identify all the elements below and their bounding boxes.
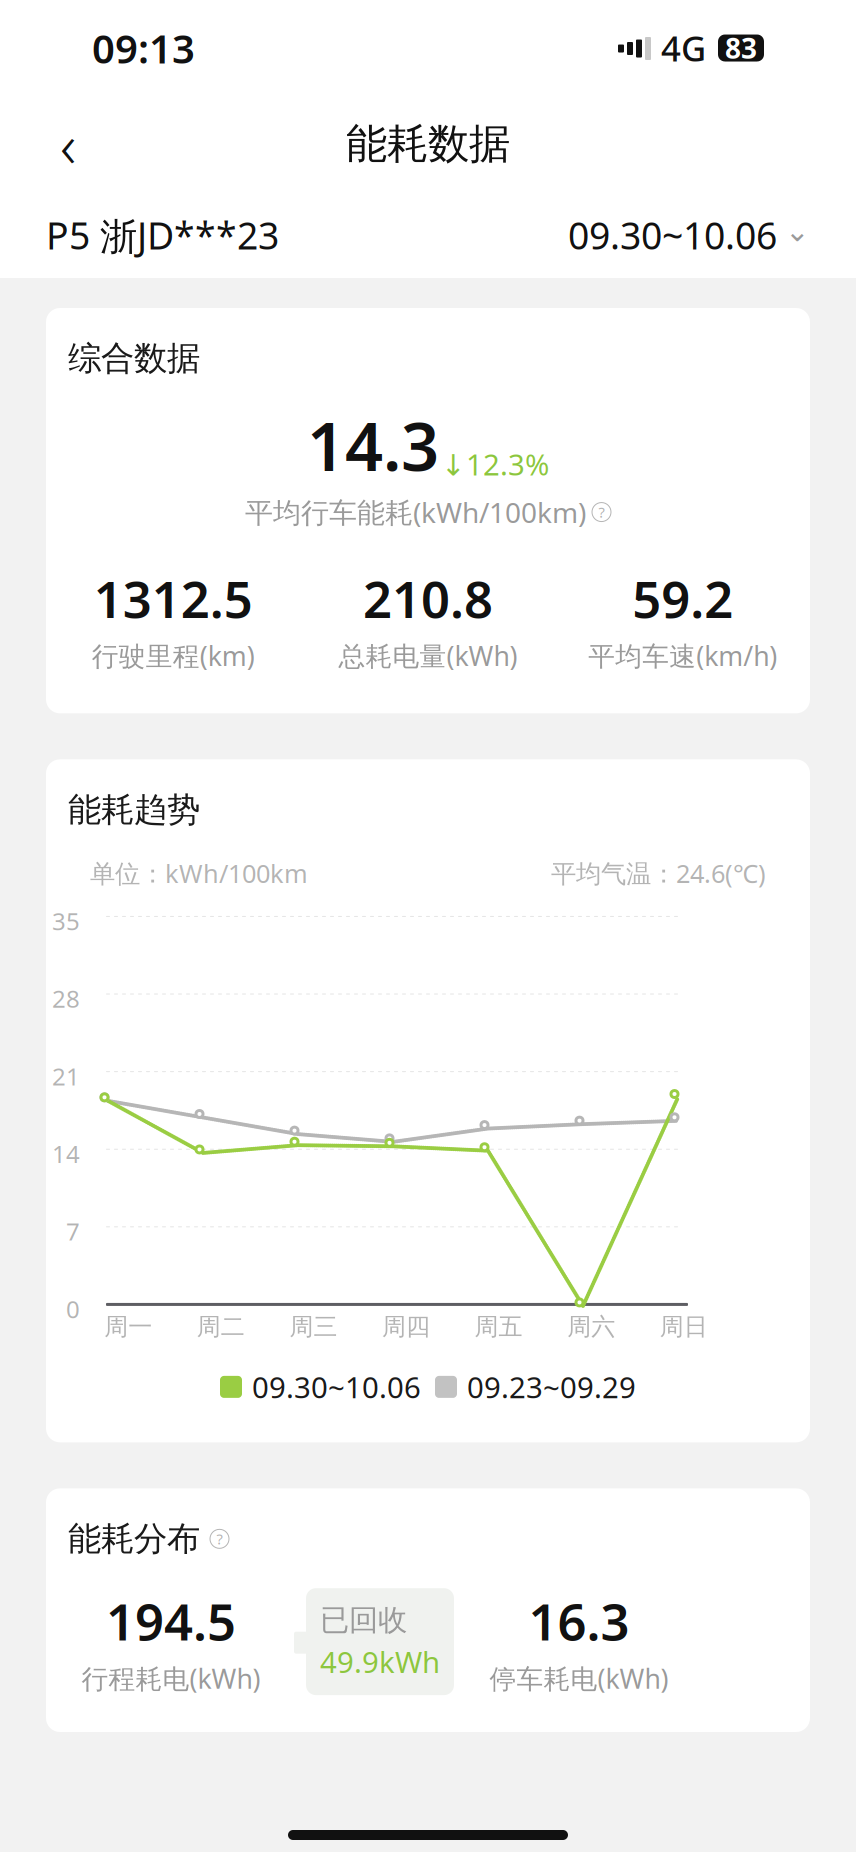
staticText: 能耗分布 [68,1518,200,1559]
button[interactable]: 平均行车能耗(kWh/100km) [245,493,611,531]
staticText: ↓12.3% [441,444,549,483]
staticText: 09.30~10.06 [252,1367,421,1406]
staticText: 09.30~10.06 [568,210,777,260]
staticText: 59.2 [632,565,733,632]
button[interactable]: 能耗分布 [68,1518,229,1559]
staticText: 周六 [567,1312,615,1341]
staticText: 28 [52,982,80,1014]
staticText: ? [598,502,604,522]
staticText: 1312.5 [94,565,253,632]
staticText: 14.3 [307,401,439,489]
staticText: 能耗数据 [346,119,510,169]
staticText: P5 浙JD***23 [46,210,279,260]
staticText: 09.23~09.29 [467,1367,636,1406]
staticText: 49.9kWh [320,1642,440,1681]
staticText: 平均车速(km/h) [588,638,777,673]
staticText: 周三 [289,1312,337,1341]
staticText: 83 [725,29,757,67]
staticText: 0 [66,1293,80,1325]
staticText: 09:13 [92,21,195,74]
staticText: 周四 [382,1312,430,1341]
staticText: 周一 [104,1312,152,1341]
staticText: 行驶里程(km) [92,638,255,673]
staticText: ? [216,1529,222,1549]
staticText: 194.5 [106,1587,236,1655]
staticText: 周五 [475,1312,523,1341]
staticText: 总耗电量(kWh) [338,638,517,673]
staticText: 14 [52,1138,80,1170]
staticText: 平均气温：24.6(℃) [551,856,766,890]
staticText: 单位：kWh/100km [90,856,308,890]
staticText: 4G [661,25,706,71]
staticText: 周日 [660,1312,708,1341]
staticText: 停车耗电(kWh) [489,1661,668,1696]
staticText: 周二 [197,1312,245,1341]
staticText: 7 [66,1215,80,1247]
staticText: 综合数据 [68,338,200,379]
staticText: 21 [52,1060,80,1092]
staticText: ⌄ [785,214,810,248]
staticText: 16.3 [528,1587,629,1655]
staticText: ‹ [60,103,76,185]
staticText: 平均行车能耗(kWh/100km) [245,493,586,531]
button[interactable]: 09.30~10.06 [568,210,810,260]
staticText: 35 [52,905,80,937]
staticText: 210.8 [363,565,493,632]
staticText: 能耗趋势 [68,789,200,830]
staticText: 已回收 [320,1602,407,1638]
staticText: 行程耗电(kWh) [81,1661,260,1696]
button[interactable]: Back [38,114,98,174]
